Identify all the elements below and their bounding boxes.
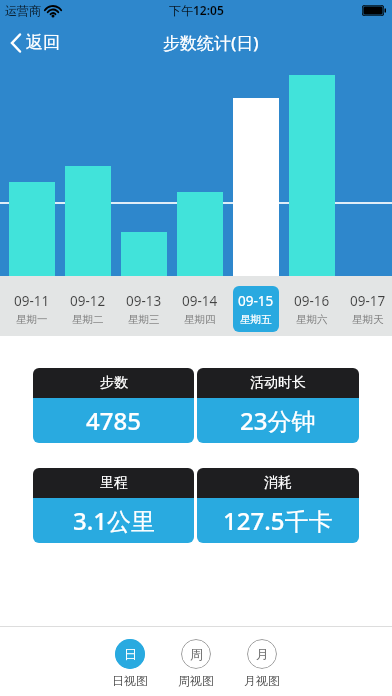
staticText: 步数 (100, 374, 128, 392)
button[interactable]: 返回 (10, 32, 60, 53)
staticText: 星期天 (352, 313, 384, 326)
staticText: 日视图 (112, 673, 148, 688)
staticText: 月视图 (244, 673, 280, 688)
staticText: 周视图 (178, 673, 214, 688)
staticText: 星期四 (184, 313, 216, 326)
button[interactable]: 09-14 (172, 276, 228, 336)
staticText: 星期一 (16, 313, 48, 326)
button[interactable]: 09-13 (116, 276, 172, 336)
button[interactable]: 09-15 (228, 276, 284, 336)
staticText: 09-17 (350, 292, 386, 310)
button[interactable]: 里程 (33, 468, 194, 543)
staticText: 星期三 (128, 313, 160, 326)
staticText: 3.1公里 (73, 504, 155, 537)
button[interactable]: 活动时长 (197, 368, 359, 443)
staticText: 下午12:05 (169, 2, 224, 18)
staticText: 09-15 (238, 292, 274, 310)
staticText: 09-11 (14, 292, 50, 310)
staticText: 里程 (100, 474, 128, 492)
staticText: 09-13 (126, 292, 162, 310)
button[interactable]: 月 (229, 627, 295, 696)
staticText: 4785 (86, 404, 141, 437)
staticText: 23分钟 (240, 404, 316, 437)
button[interactable]: 09-12 (60, 276, 116, 336)
staticText: 周 (190, 646, 203, 662)
staticText: 星期五 (240, 313, 272, 326)
button[interactable]: 09-11 (4, 276, 60, 336)
staticText: 星期二 (72, 313, 104, 326)
staticText: 127.5千卡 (223, 504, 333, 537)
staticText: 月 (256, 646, 269, 662)
staticText: 返回 (26, 32, 60, 53)
staticText: 星期六 (296, 313, 328, 326)
staticText: 09-16 (294, 292, 330, 310)
staticText: 运营商 (5, 3, 41, 18)
staticText: 步数统计(日) (163, 31, 259, 54)
staticText: 日 (124, 646, 137, 662)
staticText: 09-12 (70, 292, 106, 310)
button[interactable]: 09-16 (284, 276, 340, 336)
button[interactable]: 09-17 (340, 276, 392, 336)
button[interactable]: 步数 (33, 368, 194, 443)
staticText: 09-14 (182, 292, 218, 310)
button[interactable]: 日 (97, 627, 163, 696)
staticText: 活动时长 (250, 374, 306, 392)
button[interactable]: 周 (163, 627, 229, 696)
staticText: 消耗 (264, 474, 292, 492)
button[interactable]: 消耗 (197, 468, 359, 543)
